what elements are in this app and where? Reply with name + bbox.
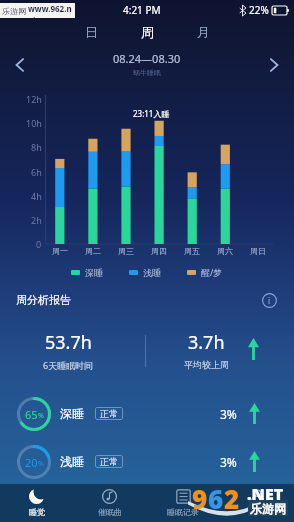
staticText: 10h — [26, 117, 42, 129]
staticText: 4:21 PM — [123, 3, 161, 17]
staticText: 浅睡 — [60, 454, 84, 469]
staticText: 醒/梦 — [201, 266, 223, 278]
staticText: 蜗牛睡眠 — [133, 68, 161, 77]
staticText: 浅睡 — [143, 267, 161, 278]
staticText: 12h — [26, 93, 42, 105]
staticText: 我的 — [249, 507, 265, 517]
staticText: 65 — [25, 407, 38, 422]
staticText: 日 — [85, 24, 98, 40]
staticText: 3% — [220, 454, 237, 470]
staticText: 2h — [31, 214, 42, 226]
staticText: 周 — [141, 24, 154, 40]
button[interactable]: 65 — [0, 390, 294, 438]
button[interactable]: 周分析报告 — [0, 288, 294, 312]
button[interactable]: 催眠曲 — [73, 484, 146, 522]
button[interactable]: 月 — [192, 21, 215, 43]
button[interactable]: 睡眠记录 — [146, 484, 220, 522]
staticText: 20 — [25, 455, 38, 470]
button[interactable]: 我的 — [220, 484, 294, 522]
button[interactable]: Next week — [263, 54, 285, 76]
staticText: 周三 — [118, 246, 134, 256]
staticText: 3% — [220, 406, 237, 422]
staticText: 2 — [224, 481, 240, 516]
staticText: 4h — [31, 190, 42, 202]
staticText: 周六 — [217, 246, 233, 256]
staticText: % — [38, 459, 44, 469]
staticText: 催眠曲 — [98, 507, 122, 517]
staticText: 平均较上周 — [184, 359, 229, 370]
staticText: 9 — [192, 481, 208, 516]
staticText: 22% — [249, 3, 269, 17]
staticText: www.962.net — [28, 3, 75, 18]
staticText: 0 — [36, 238, 42, 250]
button[interactable]: 睡觉 — [0, 484, 73, 522]
staticText: 乐游网 — [2, 6, 26, 16]
staticText: 3.7h — [188, 330, 225, 355]
staticText: 53.7h — [45, 330, 92, 355]
button[interactable]: 周 — [136, 21, 159, 43]
staticText: .NET — [247, 483, 284, 505]
staticText: i — [268, 295, 271, 306]
staticText: 月 — [197, 24, 210, 40]
button[interactable]: Previous week — [9, 54, 31, 76]
staticText: 周五 — [184, 246, 200, 256]
staticText: 周一 — [52, 246, 68, 256]
staticText: 23:11入睡 — [133, 108, 170, 119]
staticText: 6 — [208, 481, 224, 516]
staticText: 睡觉 — [29, 507, 45, 517]
staticText: 6天睡眠时间 — [43, 359, 94, 371]
button[interactable]: 20 — [0, 438, 294, 486]
staticText: 深睡 — [60, 406, 84, 421]
button[interactable]: 日 — [80, 21, 103, 43]
staticText: 6h — [31, 166, 42, 178]
staticText: 周分析报告 — [16, 293, 71, 307]
staticText: 周日 — [250, 246, 266, 256]
staticText: 正常 — [100, 408, 118, 419]
staticText: 正常 — [100, 456, 118, 467]
staticText: 深睡 — [85, 267, 103, 278]
staticText: 8h — [31, 141, 42, 153]
staticText: % — [38, 411, 44, 421]
staticText: 08.24—08.30 — [113, 51, 181, 66]
staticText: 乐游网 — [250, 501, 286, 516]
staticText: 周四 — [151, 246, 167, 256]
staticText: 周二 — [85, 246, 101, 256]
staticText: 睡眠记录 — [167, 507, 199, 517]
